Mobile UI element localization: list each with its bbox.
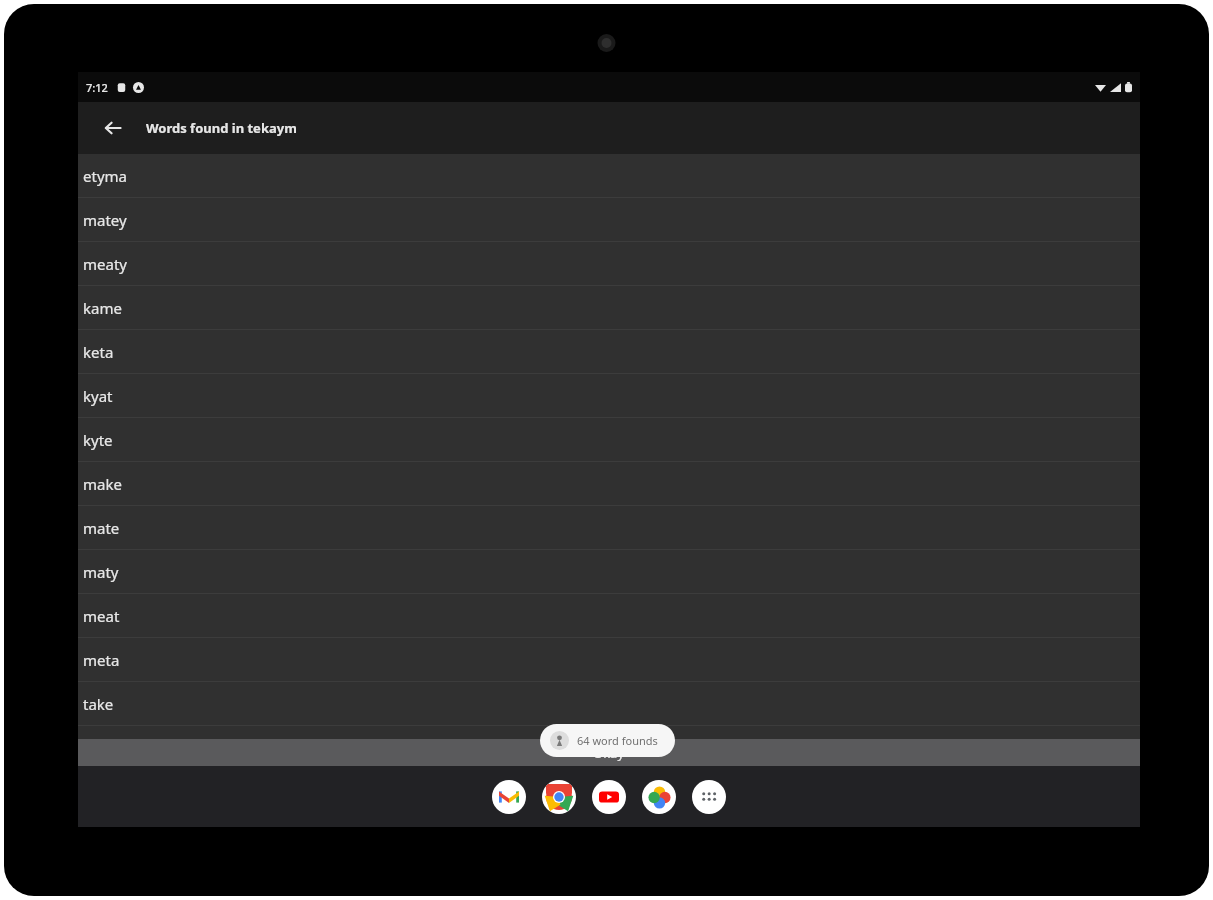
staticText: maty — [83, 562, 119, 582]
button[interactable]: kyte — [78, 418, 1140, 462]
staticText: meat — [83, 606, 120, 626]
staticText: Okay — [593, 744, 625, 762]
button[interactable]: All apps — [692, 780, 726, 814]
button[interactable]: Back — [96, 111, 130, 145]
staticText: Words found in tekaym — [146, 119, 297, 137]
staticText: take — [83, 694, 114, 714]
staticText: mate — [83, 518, 120, 538]
button[interactable]: Photos — [642, 780, 676, 814]
staticText: kyte — [83, 430, 113, 450]
button[interactable]: make — [78, 462, 1140, 506]
button[interactable]: kyat — [78, 374, 1140, 418]
button[interactable]: meaty — [78, 242, 1140, 286]
button[interactable]: matey — [78, 198, 1140, 242]
staticText: meta — [83, 650, 120, 670]
button[interactable]: meat — [78, 594, 1140, 638]
staticText: matey — [83, 210, 127, 230]
button[interactable]: kame — [78, 286, 1140, 330]
button[interactable]: Gmail — [492, 780, 526, 814]
button[interactable]: maty — [78, 550, 1140, 594]
button[interactable]: take — [78, 682, 1140, 726]
staticText: 64 word founds — [577, 733, 658, 748]
button[interactable]: etyma — [78, 154, 1140, 198]
staticText: keta — [83, 342, 114, 362]
button[interactable]: Chrome — [542, 780, 576, 814]
staticText: kame — [83, 298, 122, 318]
staticText: 7:12 — [86, 80, 108, 95]
staticText: kyat — [83, 386, 113, 406]
button[interactable]: keta — [78, 330, 1140, 374]
button[interactable]: mate — [78, 506, 1140, 550]
staticText: make — [83, 474, 122, 494]
button[interactable]: 64 word founds — [550, 724, 665, 757]
button[interactable]: Okay — [78, 739, 1140, 766]
button[interactable]: meta — [78, 638, 1140, 682]
button[interactable]: YouTube — [592, 780, 626, 814]
staticText: meaty — [83, 254, 127, 274]
staticText: etyma — [83, 166, 127, 186]
